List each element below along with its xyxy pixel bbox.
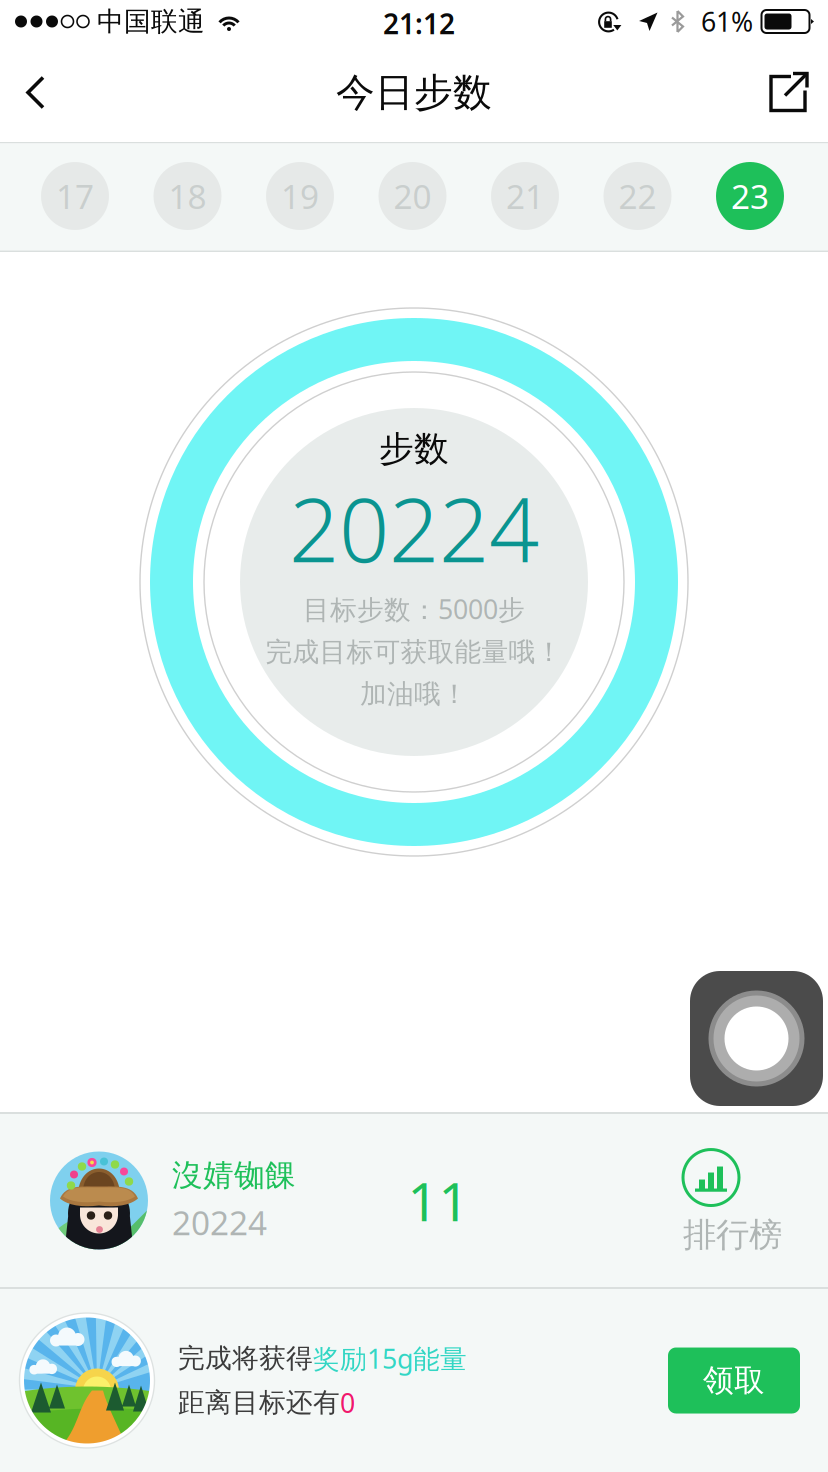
staticText: 步数 — [379, 428, 449, 470]
staticText: 11 — [407, 1165, 469, 1236]
staticText: 加油哦！ — [360, 678, 468, 710]
staticText: 61% — [701, 4, 753, 39]
staticText: 17 — [56, 174, 94, 218]
button[interactable]: Back — [0, 51, 72, 133]
staticText: 领取 — [703, 1362, 765, 1399]
staticText: 20224 — [289, 470, 539, 586]
staticText: 22 — [618, 174, 656, 218]
button[interactable]: 19 — [266, 163, 334, 231]
staticText: 完成目标可获取能量哦！ — [265, 636, 562, 668]
staticText: 完成将获得 — [178, 1342, 313, 1375]
staticText: 0 — [340, 1385, 355, 1420]
button[interactable]: 18 — [153, 163, 221, 231]
button[interactable]: Share — [748, 51, 828, 133]
button[interactable]: 21 — [491, 163, 559, 231]
staticText: 19 — [281, 174, 319, 218]
staticText: 沒婧铷餜 — [172, 1156, 296, 1194]
staticText: 18 — [168, 174, 206, 218]
staticText: 20224 — [172, 1200, 267, 1244]
button[interactable]: 22 — [603, 163, 671, 231]
staticText: 排行榜 — [683, 1214, 782, 1255]
staticText: 中国联通 — [97, 5, 205, 38]
staticText: 奖励15g能量 — [313, 1341, 467, 1376]
staticText: 距离目标还有 — [178, 1386, 340, 1419]
button[interactable]: 领取 — [668, 1347, 800, 1413]
staticText: 今日步数 — [336, 69, 492, 116]
staticText: 目标步数：5000步 — [303, 591, 525, 627]
staticText: 20 — [393, 174, 431, 218]
button[interactable]: 20 — [378, 163, 446, 231]
staticText: 23 — [731, 174, 769, 218]
button[interactable]: 23 — [716, 163, 784, 231]
button[interactable]: AssistiveTouch — [690, 971, 823, 1106]
button[interactable]: 17 — [41, 163, 109, 231]
staticText: 21:12 — [383, 5, 455, 42]
staticText: 21 — [506, 174, 544, 218]
button[interactable]: 沒婧铷餜 — [0, 1114, 828, 1287]
